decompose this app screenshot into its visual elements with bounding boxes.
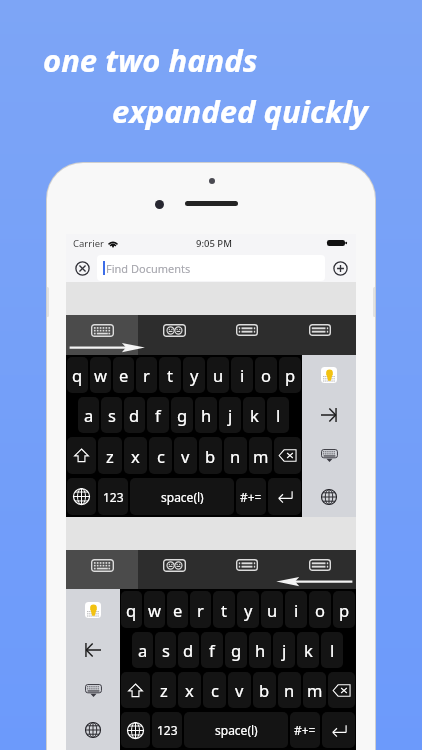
staticText: f xyxy=(155,404,161,426)
button[interactable]: s xyxy=(101,397,122,433)
button[interactable]: w xyxy=(90,357,111,393)
staticText: l xyxy=(276,404,281,426)
button[interactable]: Move keyboard xyxy=(302,395,356,435)
button[interactable]: Keyboard layout 3 xyxy=(210,315,283,355)
button[interactable]: x xyxy=(178,672,201,708)
button[interactable]: Change language xyxy=(302,476,356,517)
button[interactable]: t xyxy=(159,357,181,393)
button[interactable]: #+= xyxy=(236,478,266,515)
button[interactable]: c xyxy=(203,672,226,708)
button[interactable]: j xyxy=(219,397,241,433)
button[interactable]: Backspace xyxy=(274,437,301,474)
button[interactable]: Keyboard layout 2 xyxy=(138,315,210,355)
button[interactable]: Keyboard layout 3 xyxy=(210,550,283,589)
button[interactable]: t xyxy=(213,591,235,628)
button[interactable]: e xyxy=(167,591,188,628)
button[interactable]: Hide keyboard xyxy=(66,670,120,710)
button[interactable]: h xyxy=(195,397,217,433)
button[interactable]: space(l) xyxy=(130,478,234,515)
button[interactable]: Keyboard layout 2 xyxy=(138,550,210,589)
button[interactable]: r xyxy=(190,591,211,628)
staticText: z xyxy=(160,679,168,701)
staticText: t xyxy=(221,599,227,621)
button[interactable]: d xyxy=(124,397,145,433)
button[interactable]: i xyxy=(231,357,253,393)
staticText: m xyxy=(253,445,269,467)
button[interactable]: Shift xyxy=(121,672,150,708)
button[interactable]: Return xyxy=(322,712,355,748)
button[interactable]: Shift xyxy=(67,437,96,474)
button[interactable]: x xyxy=(124,437,147,474)
button[interactable]: m xyxy=(303,672,326,708)
button[interactable]: p xyxy=(279,357,301,393)
button[interactable]: b xyxy=(199,437,222,474)
button[interactable]: Suggestions xyxy=(302,355,356,395)
button[interactable]: Change language xyxy=(67,478,96,515)
button[interactable]: Move keyboard xyxy=(66,630,120,670)
button[interactable]: u xyxy=(207,357,229,393)
button[interactable]: Add document xyxy=(329,257,351,279)
button[interactable]: n xyxy=(278,672,301,708)
button[interactable]: g xyxy=(171,397,193,433)
button[interactable]: u xyxy=(261,591,283,628)
button[interactable]: Keyboard layout 4 xyxy=(283,315,356,355)
button[interactable]: y xyxy=(183,357,205,393)
button[interactable]: Suggestions xyxy=(66,589,120,630)
button[interactable]: 123 xyxy=(152,712,182,748)
button[interactable]: #+= xyxy=(290,712,320,748)
button[interactable]: l xyxy=(267,397,289,433)
button[interactable]: Keyboard layout 1 xyxy=(66,315,138,355)
button[interactable]: c xyxy=(149,437,172,474)
button[interactable]: j xyxy=(273,632,295,668)
button[interactable]: o xyxy=(309,591,331,628)
button[interactable]: z xyxy=(152,672,176,708)
button[interactable]: Return xyxy=(268,478,301,515)
staticText: k xyxy=(250,404,259,426)
button[interactable]: q xyxy=(67,357,88,393)
staticText: h xyxy=(201,404,212,426)
button[interactable]: m xyxy=(249,437,272,474)
button[interactable]: Hide keyboard xyxy=(302,435,356,476)
staticText: q xyxy=(72,364,83,386)
button[interactable]: Keyboard layout 1 xyxy=(66,550,138,589)
button[interactable]: w xyxy=(144,591,165,628)
button[interactable]: n xyxy=(224,437,247,474)
button[interactable]: f xyxy=(201,632,223,668)
staticText: 123 xyxy=(157,722,178,738)
button[interactable]: v xyxy=(174,437,197,474)
staticText: e xyxy=(173,599,183,621)
button[interactable]: Change language xyxy=(121,712,150,748)
button[interactable]: a xyxy=(78,397,99,433)
button[interactable]: i xyxy=(285,591,307,628)
button[interactable]: a xyxy=(132,632,153,668)
button[interactable]: p xyxy=(333,591,355,628)
staticText: h xyxy=(255,639,266,661)
button[interactable]: v xyxy=(228,672,251,708)
button[interactable]: g xyxy=(225,632,247,668)
button[interactable]: f xyxy=(147,397,169,433)
button[interactable]: o xyxy=(255,357,277,393)
button[interactable]: e xyxy=(113,357,134,393)
button[interactable]: k xyxy=(297,632,319,668)
button[interactable]: k xyxy=(243,397,265,433)
button[interactable]: 123 xyxy=(98,478,128,515)
button[interactable]: l xyxy=(321,632,343,668)
button[interactable]: Keyboard layout 4 xyxy=(283,550,356,589)
staticText: y xyxy=(244,599,253,621)
button[interactable]: space(l) xyxy=(184,712,288,748)
button[interactable]: s xyxy=(155,632,176,668)
button[interactable]: Change language xyxy=(66,710,120,750)
staticText: s xyxy=(108,404,116,426)
button[interactable]: Backspace xyxy=(328,672,355,708)
button[interactable]: Clear search xyxy=(71,257,93,279)
button[interactable]: h xyxy=(249,632,271,668)
button[interactable]: Find Documents xyxy=(97,255,325,281)
button[interactable]: r xyxy=(136,357,157,393)
button[interactable]: d xyxy=(178,632,199,668)
staticText: u xyxy=(213,364,224,386)
button[interactable]: y xyxy=(237,591,259,628)
button[interactable]: z xyxy=(98,437,122,474)
button[interactable]: b xyxy=(253,672,276,708)
button[interactable]: q xyxy=(121,591,142,628)
staticText: 123 xyxy=(103,489,124,505)
